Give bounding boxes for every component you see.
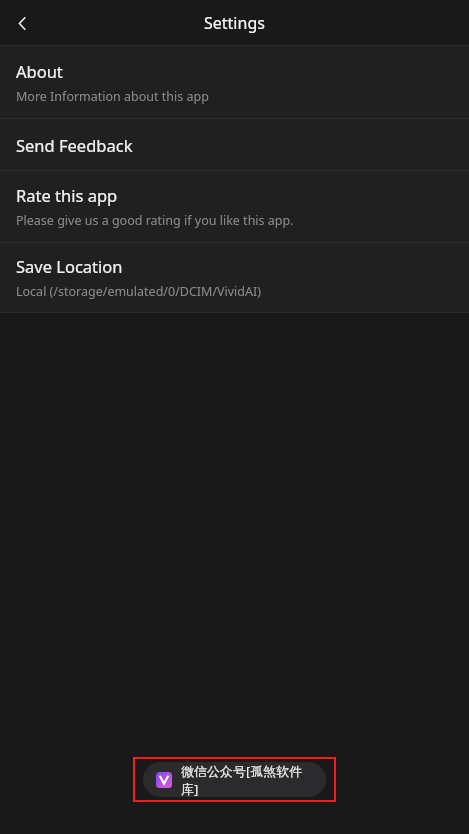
staticText: About [16,60,63,82]
staticText: Save Location [16,255,123,277]
button[interactable]: Rate this app [0,171,469,242]
button[interactable]: About [0,46,469,118]
button[interactable]: Back [5,6,39,40]
staticText: Settings [204,12,265,34]
staticText: Local (/storage/emulated/0/DCIM/VividAI) [16,283,261,300]
staticText: 微信公众号[孤煞软件库] [181,762,313,797]
button[interactable]: Send Feedback [0,119,469,170]
staticText: Send Feedback [16,134,133,156]
staticText: Please give us a good rating if you like… [16,212,294,229]
button[interactable]: 微信公众号[孤煞软件库] [143,762,326,797]
staticText: More Information about this app [16,88,209,105]
button[interactable]: Save Location [0,243,469,312]
staticText: Rate this app [16,184,118,206]
